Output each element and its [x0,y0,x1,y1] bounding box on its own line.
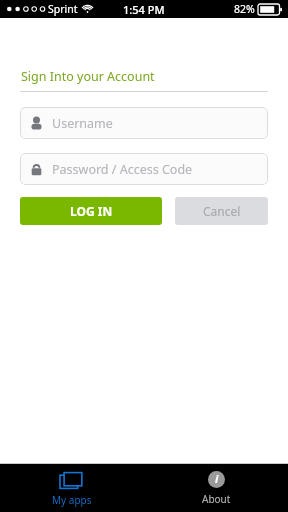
button[interactable]: LOG IN [20,197,162,225]
button[interactable]: Username [20,107,268,139]
other: My apps [60,470,84,490]
other: About [208,471,225,488]
button[interactable]: About [144,464,288,512]
staticText: Sign Into your Account [21,68,155,85]
button[interactable]: Password / Access Code [20,153,268,185]
staticText: Password / Access Code [52,161,193,178]
button[interactable]: My apps [0,464,144,512]
staticText: 1:54 PM [123,2,165,17]
staticText: i [215,471,219,486]
staticText: My apps [52,493,92,507]
staticText: Sprint [48,2,78,16]
staticText: 82% [234,2,255,16]
staticText: About [202,492,231,506]
button[interactable]: Cancel [175,197,268,225]
staticText: Username [52,115,113,132]
staticText: Cancel [203,203,241,219]
staticText: LOG IN [70,203,113,219]
